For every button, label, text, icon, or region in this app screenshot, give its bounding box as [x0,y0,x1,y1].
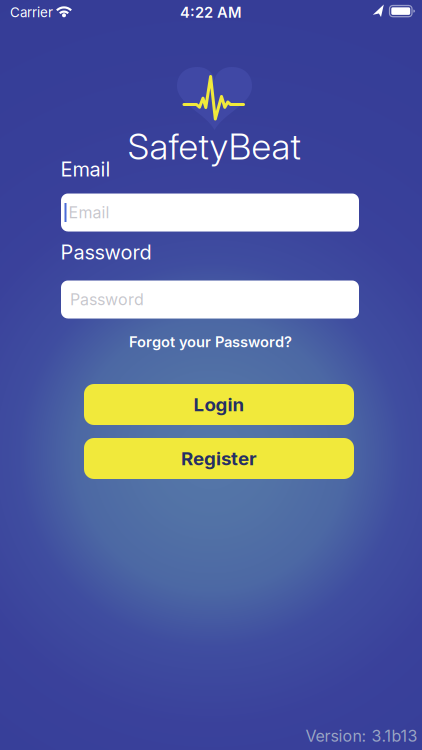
staticText: Login [193,393,244,415]
staticText: Forgot your Password? [129,333,292,351]
staticText: Register [181,447,257,469]
button[interactable]: Password [61,280,359,318]
staticText: Version: 3.1b13 [305,727,417,745]
staticText: Carrier [10,5,53,20]
button[interactable]: Register [84,438,354,479]
button[interactable]: Email [61,193,359,231]
staticText: 4:22 AM [180,4,242,21]
staticText: Password [70,290,144,309]
staticText: Email [68,203,109,222]
staticText: Email [60,157,110,181]
staticText: SafetyBeat [127,125,300,168]
button[interactable]: Login [84,384,354,425]
staticText: Password [60,240,151,264]
button[interactable]: Forgot your Password? [129,333,292,351]
